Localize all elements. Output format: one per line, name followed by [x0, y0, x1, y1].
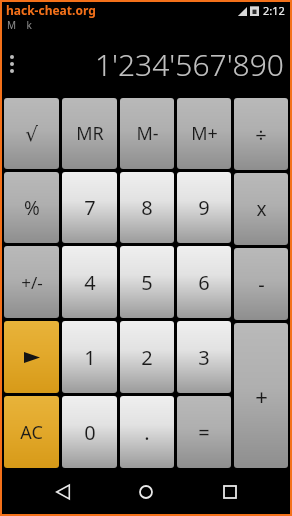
button[interactable]: AC — [4, 396, 59, 468]
button[interactable]: M- — [120, 98, 174, 169]
button[interactable]: 7 — [62, 172, 117, 243]
staticText: 1'234'567'890 — [94, 44, 284, 85]
staticText: 7 — [84, 194, 96, 221]
staticText: +/- — [21, 271, 43, 294]
button[interactable]: Backspace — [4, 321, 59, 393]
button[interactable]: √ — [4, 98, 59, 169]
button[interactable]: 3 — [177, 321, 231, 393]
button[interactable]: - — [234, 248, 288, 320]
button[interactable]: +/- — [4, 246, 59, 318]
staticText: 3 — [198, 344, 210, 371]
staticText: 1 — [84, 344, 96, 371]
staticText: . — [144, 419, 150, 446]
staticText: √ — [25, 122, 38, 145]
staticText: hack-cheat.org — [6, 2, 96, 18]
button[interactable]: 4 — [62, 246, 117, 318]
button[interactable]: . — [120, 396, 174, 468]
staticText: 6 — [198, 269, 210, 296]
staticText: ÷ — [255, 121, 267, 148]
staticText: M- — [136, 121, 159, 146]
button[interactable]: 8 — [120, 172, 174, 243]
staticText: AC — [20, 420, 43, 445]
button[interactable]: Back — [40, 470, 86, 514]
staticText: 4 — [84, 269, 96, 296]
button[interactable]: 9 — [177, 172, 231, 243]
staticText: = — [198, 419, 210, 446]
button[interactable]: % — [4, 172, 59, 243]
button[interactable]: More options — [3, 47, 21, 81]
staticText: 8 — [141, 194, 153, 221]
staticText: 2:12 — [263, 3, 285, 18]
button[interactable]: M+ — [177, 98, 231, 169]
staticText: + — [255, 381, 268, 411]
staticText: 0 — [84, 419, 96, 446]
button[interactable]: 1 — [62, 321, 117, 393]
staticText: x — [256, 196, 267, 222]
button[interactable]: x — [234, 173, 288, 245]
staticText: 2 — [141, 344, 153, 371]
button[interactable]: 2 — [120, 321, 174, 393]
staticText: MR — [76, 121, 104, 146]
staticText: M+ — [191, 121, 218, 146]
button[interactable]: 0 — [62, 396, 117, 468]
button[interactable]: 6 — [177, 246, 231, 318]
button[interactable]: MR — [62, 98, 117, 169]
button[interactable]: Recent apps — [207, 470, 253, 514]
staticText: 5 — [141, 269, 153, 296]
button[interactable]: Home — [123, 470, 169, 514]
staticText: M k — [7, 18, 32, 32]
button[interactable]: = — [177, 396, 231, 468]
staticText: - — [258, 271, 265, 298]
staticText: 9 — [198, 194, 210, 221]
button[interactable]: ÷ — [234, 98, 288, 170]
button[interactable]: 5 — [120, 246, 174, 318]
button[interactable]: + — [234, 323, 288, 468]
staticText: % — [24, 195, 40, 221]
